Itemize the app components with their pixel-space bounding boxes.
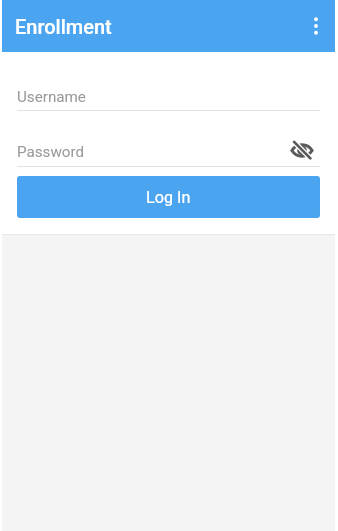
staticText: Enrollment [15,15,112,38]
button[interactable]: Show password [289,137,315,163]
button[interactable]: Log In [17,176,320,218]
staticText: Log In [146,188,191,207]
staticText: Username [17,88,86,106]
button[interactable]: Username [17,88,320,111]
button[interactable]: Password [17,143,294,161]
button[interactable]: More options [299,9,333,43]
